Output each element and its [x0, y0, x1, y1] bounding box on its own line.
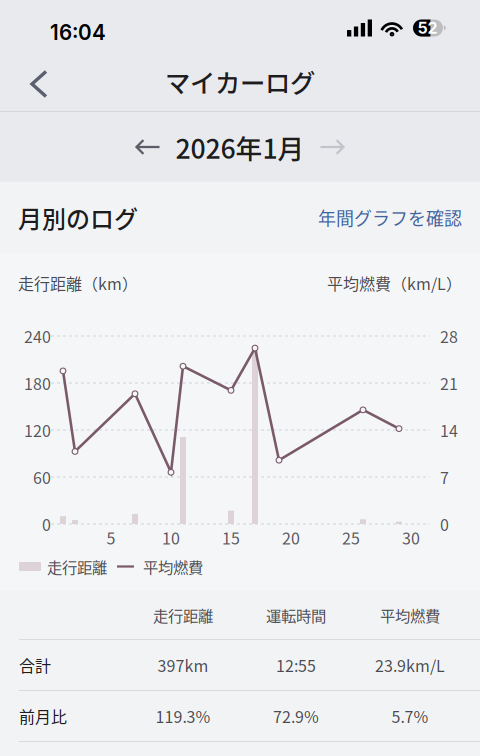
- staticText: 月別のログ: [18, 200, 138, 235]
- staticText: 397km: [157, 653, 208, 677]
- staticText: 平均燃費（km/L）: [327, 271, 462, 295]
- staticText: マイカーログ: [165, 63, 315, 100]
- staticText: 15: [222, 526, 240, 549]
- staticText: 14: [440, 418, 458, 442]
- staticText: 20: [282, 526, 300, 549]
- staticText: 10: [162, 526, 180, 549]
- staticText: 合計: [19, 653, 51, 677]
- staticText: 平均燃費: [380, 604, 440, 626]
- button[interactable]: Previous month: [126, 129, 169, 164]
- staticText: 119.3%: [155, 704, 210, 728]
- staticText: 0: [440, 512, 449, 536]
- button[interactable]: Back: [16, 58, 62, 109]
- staticText: 60: [33, 465, 51, 489]
- staticText: 5: [106, 526, 115, 549]
- staticText: 0: [42, 512, 51, 536]
- staticText: 平均燃費: [143, 555, 203, 578]
- staticText: 21: [440, 371, 458, 395]
- staticText: 72.9%: [273, 704, 319, 728]
- staticText: 12:55: [276, 653, 316, 677]
- staticText: 走行距離（km）: [18, 271, 138, 295]
- button[interactable]: 年間グラフを確認: [318, 204, 462, 231]
- staticText: 30: [402, 526, 420, 549]
- staticText: 240: [24, 324, 51, 348]
- staticText: 前月比: [19, 704, 67, 728]
- staticText: 23.9km/L: [375, 653, 445, 677]
- button[interactable]: Next month: [310, 129, 353, 164]
- staticText: 16:04: [50, 20, 106, 45]
- staticText: 運転時間: [266, 604, 326, 626]
- staticText: 25: [342, 526, 360, 549]
- staticText: 走行距離: [47, 555, 107, 578]
- staticText: 2026年1月: [175, 128, 304, 166]
- staticText: 7: [440, 465, 449, 489]
- staticText: 120: [24, 418, 51, 442]
- staticText: 年間グラフを確認: [318, 204, 462, 231]
- staticText: 52: [417, 18, 437, 38]
- staticText: 28: [440, 324, 458, 348]
- staticText: 走行距離: [153, 604, 213, 626]
- staticText: 5.7%: [391, 704, 428, 728]
- staticText: 180: [24, 371, 51, 395]
